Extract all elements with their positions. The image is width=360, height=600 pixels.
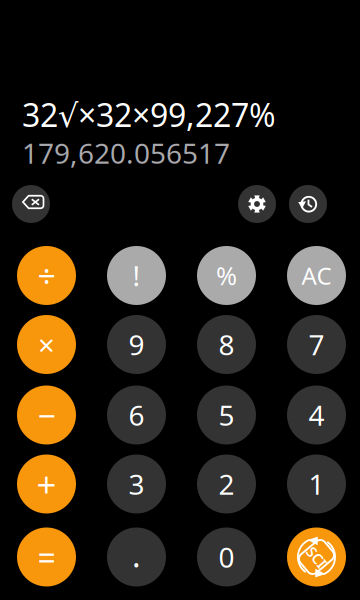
button[interactable]: 8	[197, 315, 256, 374]
staticText: 5	[218, 396, 234, 434]
button[interactable]: 9	[107, 315, 166, 374]
staticText: AC	[301, 260, 331, 291]
staticText: 8	[218, 326, 234, 363]
staticText: −	[37, 394, 55, 436]
button[interactable]: −	[17, 385, 76, 444]
button[interactable]: ×	[17, 315, 76, 374]
button[interactable]: 4	[287, 385, 346, 444]
button[interactable]: 3	[107, 454, 166, 513]
button[interactable]: Settings	[238, 185, 276, 223]
button[interactable]: ÷	[17, 246, 76, 305]
staticText: 179,620.056517	[22, 134, 230, 172]
staticText: 0	[218, 538, 234, 576]
staticText: 4	[308, 396, 324, 434]
button[interactable]	[287, 527, 346, 586]
button[interactable]: Backspace	[12, 185, 50, 223]
staticText: 2	[218, 465, 234, 503]
button[interactable]: 5	[197, 385, 256, 444]
staticText: +	[36, 461, 56, 507]
button[interactable]: AC	[287, 246, 346, 305]
staticText: 9	[128, 326, 144, 363]
staticText: 6	[128, 396, 144, 434]
button[interactable]: 1	[287, 454, 346, 513]
staticText: %	[216, 259, 237, 292]
button[interactable]: 7	[287, 315, 346, 374]
staticText: 3	[128, 465, 144, 503]
button[interactable]: 6	[107, 385, 166, 444]
button[interactable]: 0	[197, 527, 256, 586]
staticText: SCI	[305, 547, 327, 567]
staticText: 1	[308, 465, 324, 503]
button[interactable]: .	[107, 527, 166, 586]
staticText: ÷	[37, 254, 55, 297]
staticText: ×	[38, 325, 55, 364]
staticText: 7	[308, 326, 324, 363]
staticText: .	[132, 534, 141, 576]
button[interactable]: =	[17, 527, 76, 586]
button[interactable]: History	[289, 185, 327, 223]
button[interactable]: !	[107, 246, 166, 305]
staticText: 32√×32×99,227%	[22, 93, 276, 136]
button[interactable]: +	[17, 454, 76, 513]
button[interactable]: %	[197, 246, 256, 305]
staticText: =	[37, 536, 55, 578]
button[interactable]: 2	[197, 454, 256, 513]
staticText: !	[132, 257, 140, 294]
